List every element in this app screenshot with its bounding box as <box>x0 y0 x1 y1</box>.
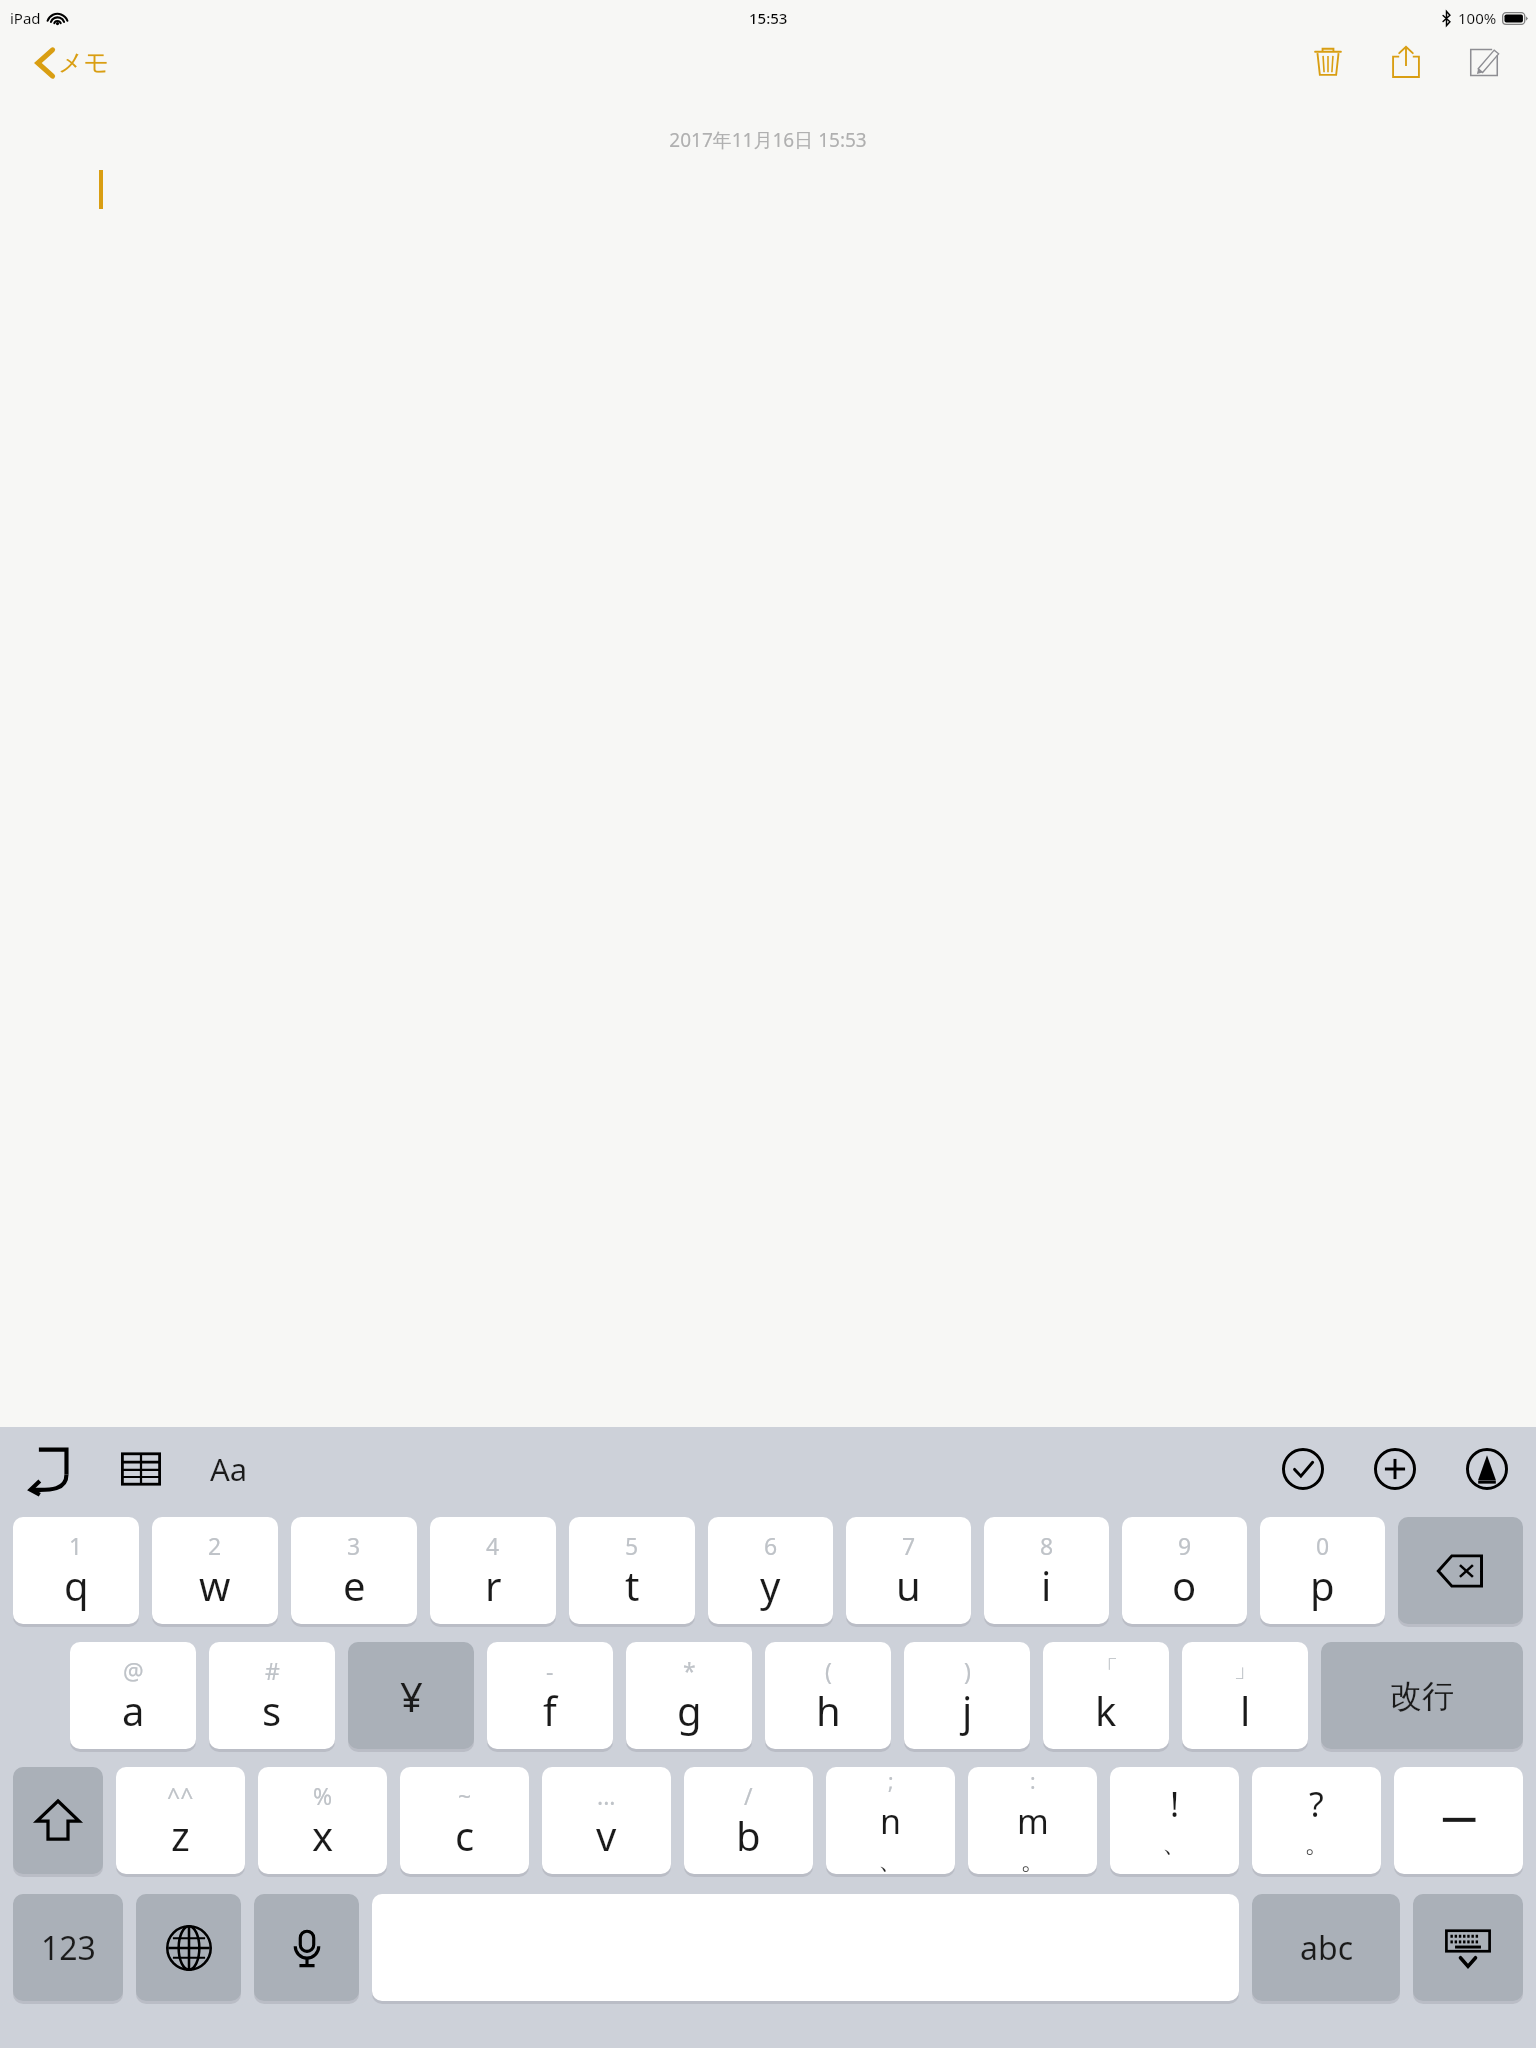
staticText: x <box>312 1808 334 1862</box>
staticText: e <box>343 1558 366 1612</box>
staticText: z <box>171 1808 190 1862</box>
staticText: u <box>896 1558 921 1612</box>
button[interactable]: Dictate <box>254 1894 359 2001</box>
button[interactable]: Change keyboard <box>136 1894 241 2001</box>
button[interactable]: Share <box>1380 36 1432 88</box>
button[interactable]: Hide keyboard <box>1413 1894 1523 2001</box>
button[interactable]: - <box>487 1642 613 1749</box>
staticText: 9 <box>1178 1530 1192 1561</box>
staticText: m <box>1017 1798 1049 1844</box>
staticText: ~ <box>458 1780 472 1811</box>
staticText: 15:53 <box>749 8 788 28</box>
staticText: a <box>122 1683 145 1737</box>
staticText: n <box>880 1798 902 1844</box>
staticText: 3 <box>347 1530 361 1561</box>
button[interactable]: ~ <box>400 1767 529 1874</box>
button[interactable]: Delete <box>1302 36 1354 88</box>
staticText: ¥ <box>400 1669 423 1723</box>
staticText: ? <box>1309 1781 1324 1827</box>
button[interactable]: ) <box>904 1642 1030 1749</box>
button[interactable]: ? <box>1252 1767 1381 1874</box>
staticText: 」 <box>1234 1655 1257 1684</box>
staticText: 8 <box>1040 1530 1054 1561</box>
button[interactable]: 8 <box>984 1517 1109 1624</box>
staticText: 。 <box>1020 1844 1046 1874</box>
staticText: # <box>265 1655 280 1686</box>
button[interactable]: 4 <box>430 1517 556 1624</box>
button[interactable]: # <box>209 1642 335 1749</box>
staticText: abc <box>1300 1926 1353 1970</box>
staticText: t <box>625 1558 640 1612</box>
button[interactable]: 123 <box>13 1894 123 2001</box>
staticText: r <box>485 1558 502 1612</box>
staticText: ー <box>1439 1796 1479 1846</box>
button[interactable]: : <box>968 1767 1097 1874</box>
button[interactable]: ^^ <box>116 1767 245 1874</box>
staticText: 、 <box>1162 1827 1188 1860</box>
staticText: l <box>1240 1683 1251 1737</box>
button[interactable]: ー <box>1394 1767 1523 1874</box>
button[interactable]: 2 <box>152 1517 278 1624</box>
button[interactable]: Undo <box>20 1440 78 1498</box>
staticText: q <box>64 1558 89 1612</box>
button[interactable]: Table <box>112 1440 170 1498</box>
button[interactable]: 3 <box>291 1517 417 1624</box>
staticText: b <box>736 1808 761 1862</box>
staticText: c <box>455 1808 475 1862</box>
staticText: 1 <box>69 1530 83 1561</box>
staticText: 2017年11月16日 15:53 <box>669 127 867 153</box>
button[interactable]: 0 <box>1260 1517 1385 1624</box>
staticText: 6 <box>764 1530 778 1561</box>
button[interactable]: New note <box>1458 36 1510 88</box>
staticText: ) <box>964 1655 971 1686</box>
staticText: 4 <box>486 1530 500 1561</box>
button[interactable]: 6 <box>708 1517 833 1624</box>
staticText: 。 <box>1304 1827 1330 1860</box>
staticText: @ <box>123 1655 144 1686</box>
staticText: ... <box>597 1780 616 1811</box>
staticText: - <box>546 1655 554 1686</box>
staticText: 「 <box>1095 1655 1118 1684</box>
button[interactable]: ... <box>542 1767 671 1874</box>
staticText: 2 <box>208 1530 222 1561</box>
button[interactable]: Checklist <box>1274 1440 1332 1498</box>
button[interactable]: * <box>626 1642 752 1749</box>
button[interactable]: 1 <box>13 1517 139 1624</box>
staticText: y <box>760 1558 781 1612</box>
button[interactable]: 9 <box>1122 1517 1247 1624</box>
staticText: 100% <box>1458 8 1497 28</box>
staticText: ( <box>825 1655 832 1686</box>
button[interactable]: Insert <box>1366 1440 1424 1498</box>
staticText: o <box>1172 1558 1197 1612</box>
button[interactable]: / <box>684 1767 813 1874</box>
button[interactable]: ! <box>1110 1767 1239 1874</box>
button[interactable]: 7 <box>846 1517 971 1624</box>
button[interactable]: @ <box>70 1642 196 1749</box>
button[interactable]: 「 <box>1043 1642 1169 1749</box>
button[interactable]: ¥ <box>348 1642 474 1749</box>
button[interactable]: abc <box>1252 1894 1400 2001</box>
staticText: / <box>744 1780 753 1811</box>
staticText: w <box>199 1558 231 1612</box>
staticText: ! <box>1170 1781 1180 1827</box>
staticText: g <box>677 1683 702 1737</box>
staticText: Aa <box>210 1448 248 1490</box>
button[interactable]: 」 <box>1182 1642 1308 1749</box>
button[interactable]: 5 <box>569 1517 695 1624</box>
button[interactable]: Backspace <box>1398 1517 1523 1624</box>
staticText: 、 <box>878 1844 904 1874</box>
staticText: i <box>1041 1558 1052 1612</box>
button[interactable]: メモ <box>36 47 110 78</box>
button[interactable]: Shift <box>13 1767 103 1874</box>
button[interactable]: % <box>258 1767 387 1874</box>
button[interactable]: 改行 <box>1321 1642 1523 1749</box>
staticText: : <box>1030 1767 1036 1796</box>
button[interactable]: ; <box>826 1767 955 1874</box>
button[interactable]: Draw <box>1458 1440 1516 1498</box>
staticText: h <box>816 1683 841 1737</box>
button[interactable]: Aa <box>200 1440 258 1498</box>
button[interactable]: ( <box>765 1642 891 1749</box>
staticText: * <box>683 1655 696 1686</box>
staticText: v <box>596 1808 617 1862</box>
